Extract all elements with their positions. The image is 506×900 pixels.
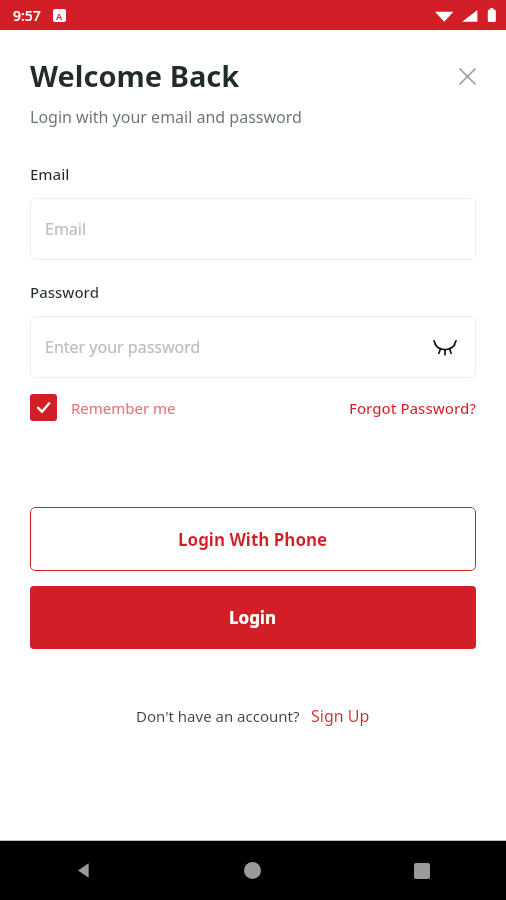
staticText: Email xyxy=(45,218,87,240)
button[interactable]: Remember me xyxy=(30,394,176,421)
button[interactable]: Email xyxy=(30,198,476,260)
staticText: Login xyxy=(229,606,277,629)
staticText: Password xyxy=(30,282,99,302)
staticText: Login With Phone xyxy=(178,528,328,551)
button[interactable]: Show password xyxy=(430,332,460,362)
staticText: Sign Up xyxy=(311,705,370,727)
button[interactable]: Enter your password xyxy=(30,316,476,378)
button[interactable]: Forgot Password? xyxy=(349,398,477,418)
staticText: Forgot Password? xyxy=(349,398,477,418)
button[interactable]: Close xyxy=(450,59,484,93)
staticText: Remember me xyxy=(71,398,176,418)
staticText: A xyxy=(56,10,63,22)
staticText: 9:57 xyxy=(13,6,41,25)
button[interactable]: Back xyxy=(0,841,168,900)
staticText: Enter your password xyxy=(45,336,201,358)
staticText: Email xyxy=(30,164,70,184)
staticText: Login with your email and password xyxy=(30,106,302,128)
button[interactable]: Recent apps xyxy=(337,841,506,900)
button[interactable]: Sign Up xyxy=(311,705,370,727)
button[interactable]: Login With Phone xyxy=(30,507,476,571)
button[interactable]: Login xyxy=(30,586,476,649)
staticText: Welcome Back xyxy=(30,56,240,95)
staticText: Don't have an account? xyxy=(136,706,300,726)
button[interactable]: Home xyxy=(168,841,337,900)
